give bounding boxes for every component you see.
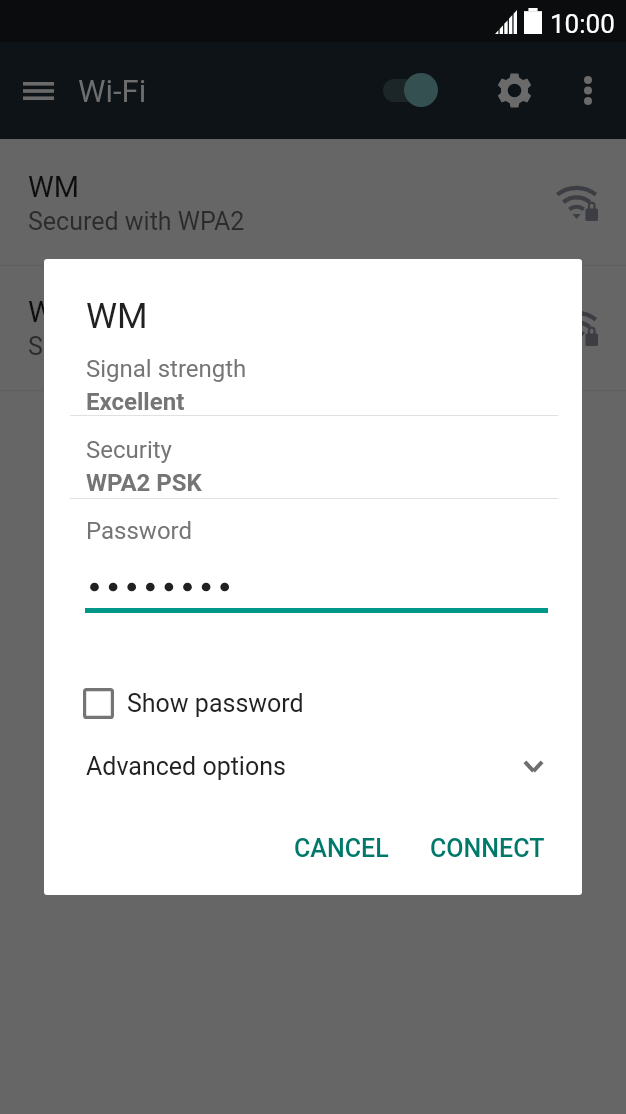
staticText: Wi-Fi: [78, 73, 147, 109]
button[interactable]: Turn Wi-Fi off: [374, 66, 440, 114]
staticText: WM: [86, 296, 148, 337]
button[interactable]: Advanced options: [72, 743, 582, 789]
staticText: CONNECT: [430, 834, 545, 863]
button[interactable]: Password: [85, 509, 548, 613]
staticText: Signal strength: [86, 355, 247, 383]
staticText: CANCEL: [294, 834, 389, 863]
staticText: WM: [28, 170, 80, 204]
staticText: Advanced options: [86, 752, 286, 781]
staticText: Excellent: [86, 388, 185, 416]
button[interactable]: Show password: [77, 680, 310, 726]
staticText: Secured with WPA2: [28, 207, 245, 236]
button[interactable]: WM: [0, 267, 626, 390]
button[interactable]: CONNECT: [422, 825, 552, 871]
staticText: Security: [86, 436, 172, 464]
staticText: Secured with WPA2: [28, 332, 245, 361]
button[interactable]: Settings: [490, 66, 538, 114]
button[interactable]: Navigation drawer: [14, 67, 62, 115]
staticText: Show password: [127, 689, 304, 718]
button[interactable]: WM: [0, 142, 626, 265]
staticText: WM: [28, 295, 80, 329]
staticText: WPA2 PSK: [86, 469, 202, 497]
staticText: 10:00: [550, 9, 615, 39]
button[interactable]: More options: [564, 66, 612, 114]
button[interactable]: CANCEL: [286, 825, 396, 871]
staticText: Password: [86, 517, 193, 545]
